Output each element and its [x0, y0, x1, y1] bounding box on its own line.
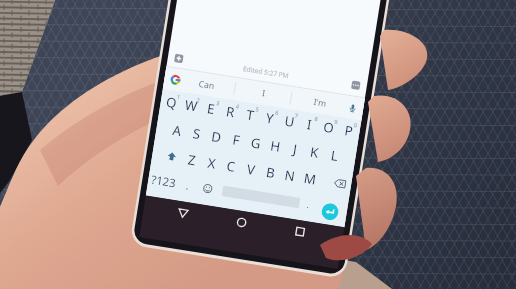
- button[interactable]: [0, 0, 516, 289]
